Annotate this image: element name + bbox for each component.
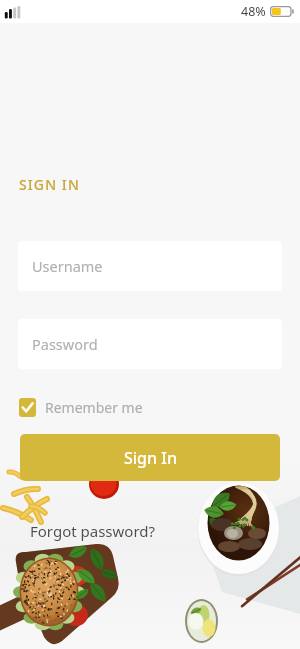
button[interactable]: Username <box>18 241 282 291</box>
button[interactable]: Forgot password? <box>30 521 156 541</box>
button[interactable]: Password <box>18 319 282 369</box>
button[interactable]: Sign In <box>20 434 280 481</box>
staticText: SIGN IN <box>19 175 80 194</box>
staticText: 48% <box>241 3 266 20</box>
staticText: Forgot password? <box>30 521 156 541</box>
staticText: Password <box>32 334 98 354</box>
staticText: Remember me <box>45 398 143 417</box>
staticText: Username <box>32 256 103 276</box>
button[interactable]: Remember me checkbox <box>19 398 36 417</box>
staticText: Sign In <box>124 447 177 469</box>
